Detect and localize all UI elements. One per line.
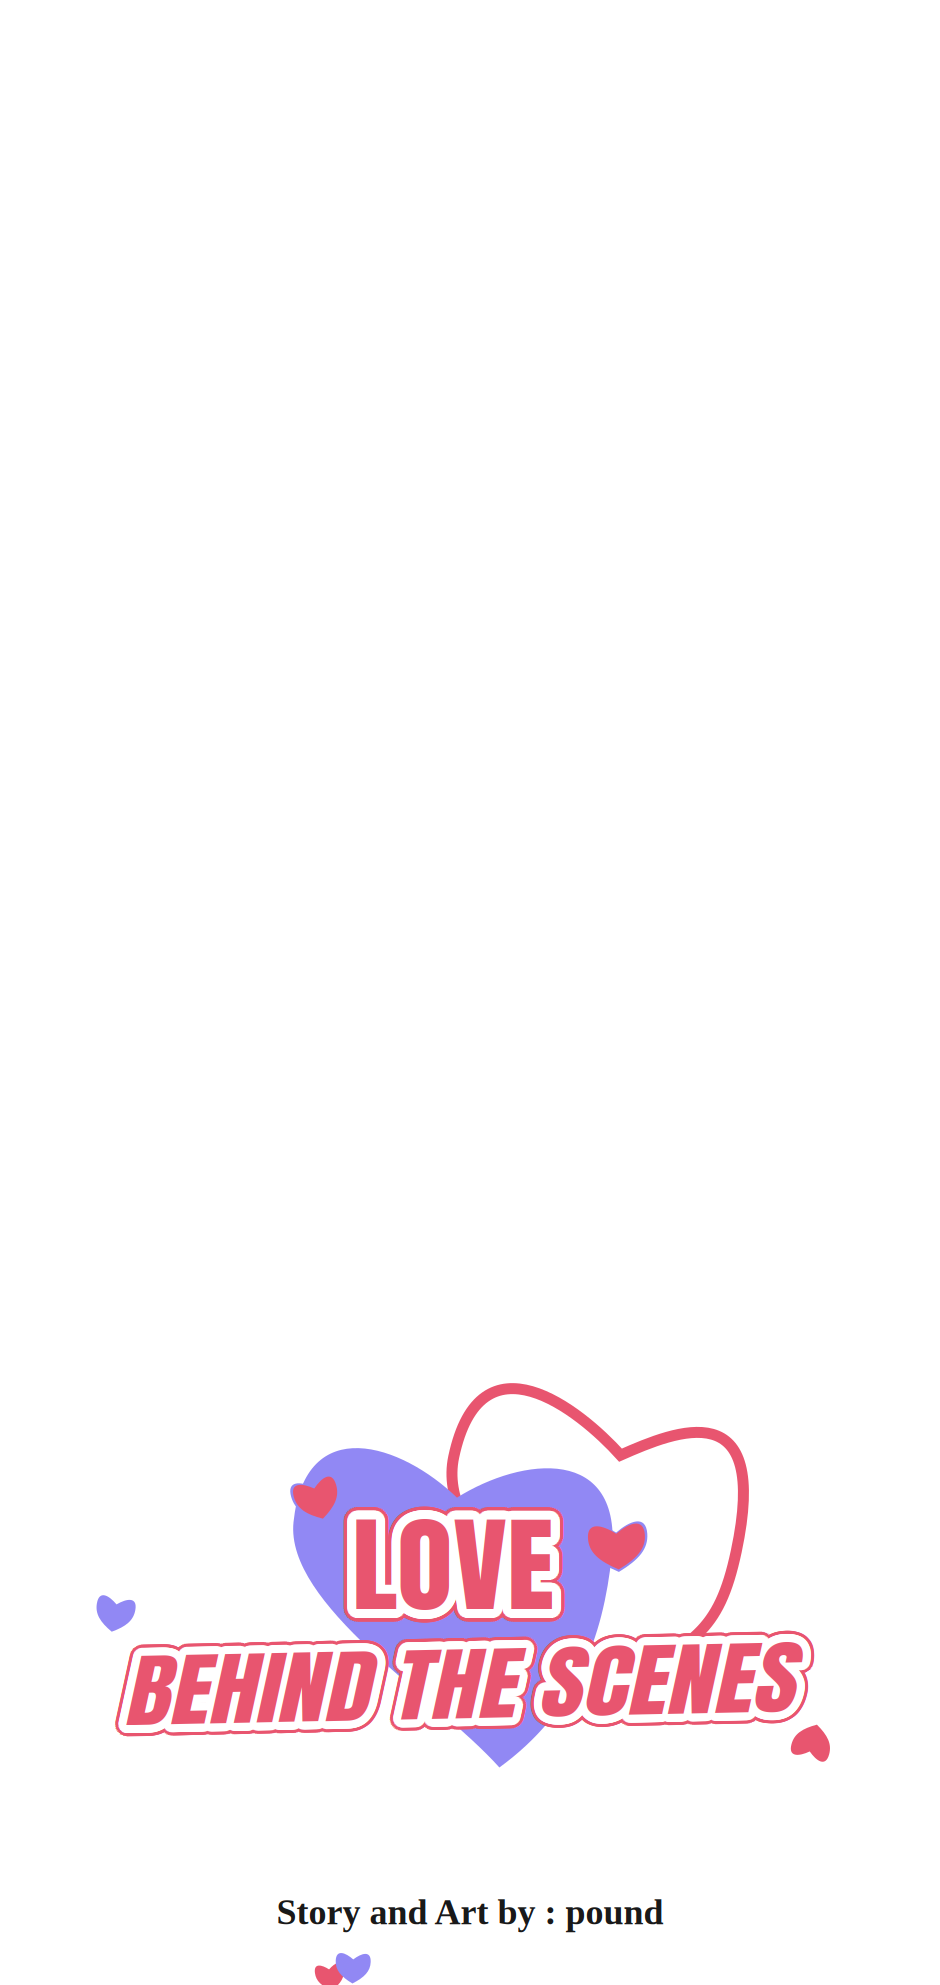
staticText: BEHIND THE SCENES <box>154 1631 723 1752</box>
staticText: LOVE <box>356 1475 540 1631</box>
staticText: BEHIND THE SCENES <box>148 1614 717 1734</box>
staticText: LOVE <box>356 1479 540 1635</box>
staticText: LOVE <box>345 1492 529 1649</box>
staticText: LOVE <box>357 1479 541 1636</box>
staticText: LOVE <box>348 1499 532 1655</box>
staticText: LOVE <box>361 1487 545 1643</box>
staticText: BEHIND THE SCENES <box>155 1621 724 1742</box>
staticText: LOVE <box>358 1476 542 1632</box>
staticText: BEHIND THE SCENES <box>146 1636 715 1756</box>
staticText: BEHIND THE SCENES <box>141 1632 710 1752</box>
staticText: LOVE <box>364 1491 548 1647</box>
staticText: LOVE <box>361 1496 545 1652</box>
staticText: LOVE <box>363 1492 547 1649</box>
staticText: LOVE <box>359 1481 543 1638</box>
staticText: BEHIND THE SCENES <box>135 1618 704 1739</box>
staticText: BEHIND THE SCENES <box>143 1614 712 1734</box>
staticText: LOVE <box>361 1489 545 1646</box>
staticText: LOVE <box>364 1489 548 1645</box>
staticText: LOVE <box>349 1478 533 1635</box>
staticText: BEHIND THE SCENES <box>133 1625 702 1745</box>
staticText: LOVE <box>362 1479 546 1636</box>
staticText: BEHIND THE SCENES <box>146 1617 715 1737</box>
staticText: BEHIND THE SCENES <box>151 1629 720 1750</box>
staticText: LOVE <box>352 1487 536 1643</box>
staticText: LOVE <box>344 1491 528 1647</box>
staticText: LOVE <box>360 1491 544 1647</box>
staticText: LOVE <box>352 1499 536 1656</box>
staticText: LOVE <box>340 1489 524 1645</box>
staticText: BEHIND THE SCENES <box>134 1630 703 1750</box>
staticText: Story and Art by : pound <box>276 1892 663 1932</box>
staticText: LOVE <box>358 1480 542 1637</box>
staticText: BEHIND THE SCENES <box>150 1635 719 1755</box>
staticText: LOVE <box>364 1483 548 1639</box>
staticText: LOVE <box>356 1499 540 1655</box>
staticText: BEHIND THE SCENES <box>143 1617 712 1737</box>
staticText: BEHIND THE SCENES <box>144 1617 713 1737</box>
staticText: LOVE <box>344 1483 528 1639</box>
staticText: LOVE <box>364 1485 548 1641</box>
staticText: LOVE <box>361 1478 545 1634</box>
staticText: LOVE <box>354 1499 538 1656</box>
staticText: BEHIND THE SCENES <box>147 1617 716 1738</box>
staticText: BEHIND THE SCENES <box>154 1620 723 1740</box>
staticText: BEHIND THE SCENES <box>148 1632 717 1752</box>
staticText: BEHIND THE SCENES <box>134 1621 703 1742</box>
staticText: LOVE <box>339 1487 523 1643</box>
staticText: BEHIND THE SCENES <box>149 1631 718 1752</box>
staticText: BEHIND THE SCENES <box>152 1617 721 1737</box>
staticText: LOVE <box>351 1478 535 1634</box>
staticText: LOVE <box>343 1496 527 1652</box>
staticText: LOVE <box>343 1489 527 1646</box>
staticText: BEHIND THE SCENES <box>142 1617 711 1738</box>
staticText: LOVE <box>343 1487 527 1643</box>
staticText: BEHIND THE SCENES <box>144 1633 713 1753</box>
staticText: BEHIND THE SCENES <box>141 1614 710 1734</box>
staticText: BEHIND THE SCENES <box>152 1625 721 1745</box>
staticText: BEHIND THE SCENES <box>156 1623 725 1743</box>
staticText: LOVE <box>342 1494 526 1651</box>
staticText: BEHIND THE SCENES <box>152 1622 721 1743</box>
staticText: BEHIND THE SCENES <box>139 1619 708 1739</box>
staticText: BEHIND THE SCENES <box>148 1635 717 1756</box>
staticText: LOVE <box>346 1493 530 1650</box>
staticText: LOVE <box>358 1493 542 1650</box>
staticText: BEHIND THE SCENES <box>141 1618 710 1738</box>
staticText: BEHIND THE SCENES <box>150 1619 719 1739</box>
staticText: LOVE <box>354 1474 538 1631</box>
staticText: LOVE <box>352 1474 536 1631</box>
staticText: LOVE <box>345 1481 529 1638</box>
staticText: BEHIND THE SCENES <box>152 1621 721 1742</box>
staticText: BEHIND THE SCENES <box>147 1632 716 1753</box>
staticText: BEHIND THE SCENES <box>152 1628 721 1749</box>
staticText: BEHIND THE SCENES <box>155 1628 724 1749</box>
staticText: BEHIND THE SCENES <box>143 1633 712 1753</box>
staticText: BEHIND THE SCENES <box>152 1627 721 1748</box>
staticText: BEHIND THE SCENES <box>142 1632 711 1753</box>
staticText: LOVE <box>356 1495 540 1651</box>
staticText: LOVE <box>343 1484 527 1640</box>
staticText: LOVE <box>342 1479 526 1636</box>
staticText: LOVE <box>346 1476 530 1632</box>
staticText: BEHIND THE SCENES <box>140 1631 709 1752</box>
staticText: BEHIND THE SCENES <box>151 1616 720 1736</box>
staticText: BEHIND THE SCENES <box>139 1630 708 1751</box>
staticText: BEHIND THE SCENES <box>148 1618 717 1738</box>
staticText: BEHIND THE SCENES <box>138 1634 707 1754</box>
staticText: BEHIND THE SCENES <box>150 1630 719 1751</box>
staticText: LOVE <box>355 1478 539 1635</box>
staticText: LOVE <box>359 1492 543 1649</box>
staticText: LOVE <box>345 1477 529 1633</box>
staticText: LOVE <box>357 1494 541 1651</box>
staticText: BEHIND THE SCENES <box>137 1627 706 1748</box>
staticText: LOVE <box>363 1481 547 1638</box>
staticText: LOVE <box>360 1483 544 1639</box>
staticText: BEHIND THE SCENES <box>141 1635 710 1756</box>
staticText: LOVE <box>353 1478 537 1634</box>
staticText: BEHIND THE SCENES <box>137 1623 706 1744</box>
staticText: LOVE <box>359 1497 543 1653</box>
staticText: BEHIND THE SCENES <box>149 1618 718 1739</box>
staticText: BEHIND THE SCENES <box>154 1630 723 1750</box>
staticText: LOVE <box>347 1479 531 1636</box>
